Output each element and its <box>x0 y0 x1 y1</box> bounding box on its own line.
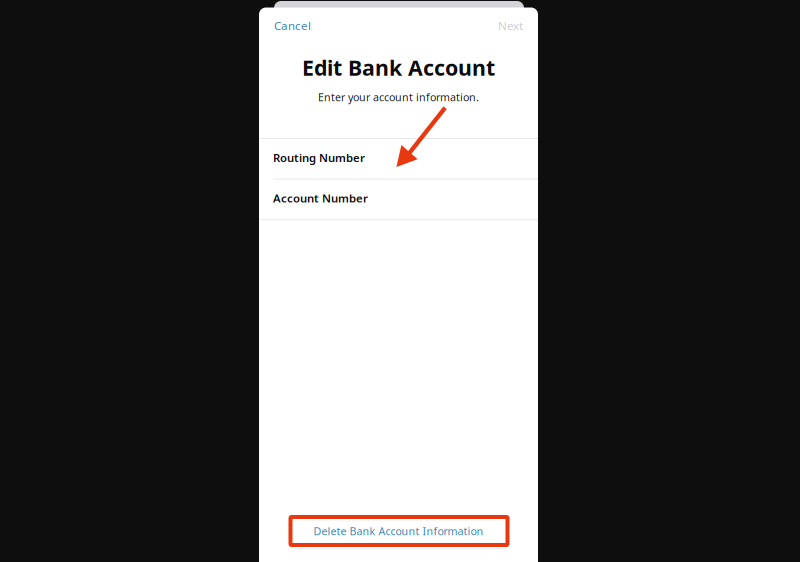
staticText: Next <box>498 18 523 33</box>
button[interactable]: Routing Number <box>259 139 538 179</box>
button[interactable]: Next <box>498 17 523 33</box>
button[interactable]: Delete Bank Account Information <box>259 520 538 542</box>
staticText: Routing Number <box>273 150 365 165</box>
button[interactable]: Cancel <box>274 17 311 33</box>
staticText: Delete Bank Account Information <box>313 524 483 538</box>
staticText: Enter your account information. <box>318 90 479 104</box>
staticText: Cancel <box>274 18 311 33</box>
staticText: Edit Bank Account <box>302 53 495 82</box>
button[interactable]: Account Number <box>259 180 538 219</box>
staticText: Account Number <box>273 190 368 206</box>
